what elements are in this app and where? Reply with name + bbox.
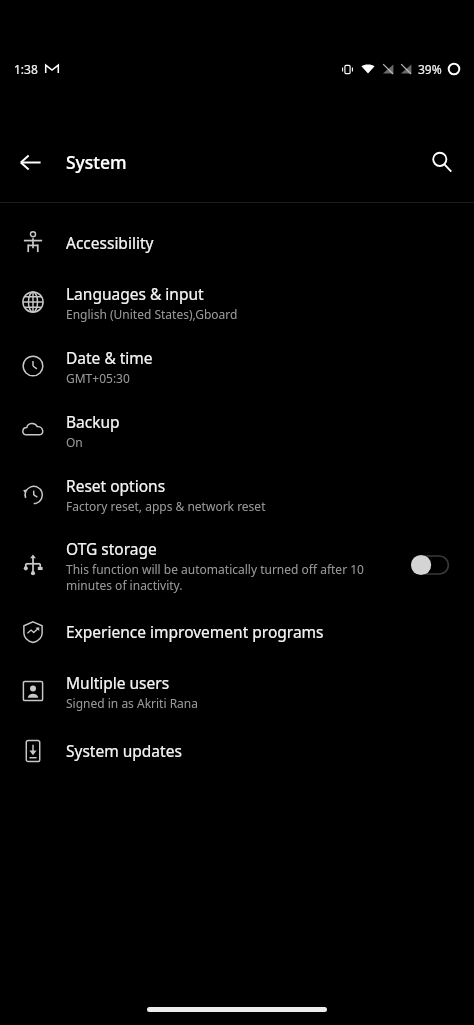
staticText: This function will be automatically turn… <box>66 561 398 593</box>
staticText: Multiple users <box>66 672 170 693</box>
staticText: Signed in as Akriti Rana <box>66 695 199 711</box>
button[interactable] <box>406 545 458 585</box>
staticText: On <box>66 434 83 450</box>
button[interactable]: Multiple users <box>0 659 474 723</box>
staticText: Factory reset, apps & network reset <box>66 498 266 514</box>
staticText: OTG storage <box>66 538 157 559</box>
button[interactable]: System updates <box>0 723 474 778</box>
button[interactable]: Experience improvement programs <box>0 604 474 659</box>
button[interactable]: Backup <box>0 398 474 462</box>
staticText: Experience improvement programs <box>66 621 324 642</box>
staticText: GMT+05:30 <box>66 370 130 386</box>
staticText: Accessibility <box>66 232 154 253</box>
button[interactable]: Search <box>418 138 466 186</box>
staticText: 1:38 <box>14 61 38 77</box>
button[interactable]: OTG storage <box>0 526 474 604</box>
staticText: Reset options <box>66 475 166 496</box>
staticText: 39% <box>418 61 442 77</box>
staticText: System updates <box>66 740 182 761</box>
staticText: English (United States),Gboard <box>66 306 238 322</box>
button[interactable]: Date & time <box>0 334 474 398</box>
staticText: Date & time <box>66 347 153 368</box>
staticText: Languages & input <box>66 283 204 304</box>
button[interactable]: Accessibility <box>0 215 474 270</box>
button[interactable]: Languages & input <box>0 270 474 334</box>
staticText: Backup <box>66 411 120 432</box>
button[interactable]: Reset options <box>0 462 474 526</box>
staticText: System <box>66 150 127 174</box>
button[interactable]: Back <box>6 138 54 186</box>
